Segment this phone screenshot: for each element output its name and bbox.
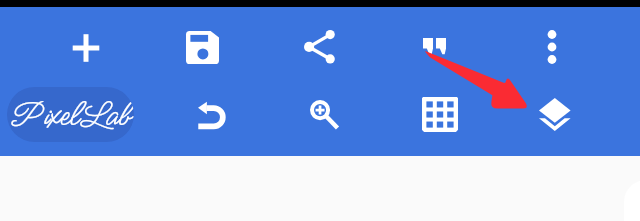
button[interactable]: Zoom in bbox=[300, 90, 348, 138]
button[interactable]: Add bbox=[62, 24, 110, 72]
button[interactable]: More options bbox=[528, 23, 576, 71]
button[interactable]: Grid bbox=[416, 90, 464, 138]
button[interactable]: Text bbox=[410, 22, 458, 70]
button[interactable]: Undo bbox=[187, 91, 235, 139]
button[interactable]: Save bbox=[178, 23, 226, 71]
button[interactable]: PixelLab bbox=[7, 87, 134, 142]
staticText: PixelLab bbox=[9, 93, 132, 137]
button[interactable]: Layers bbox=[531, 90, 579, 138]
button[interactable]: Share bbox=[295, 23, 343, 71]
